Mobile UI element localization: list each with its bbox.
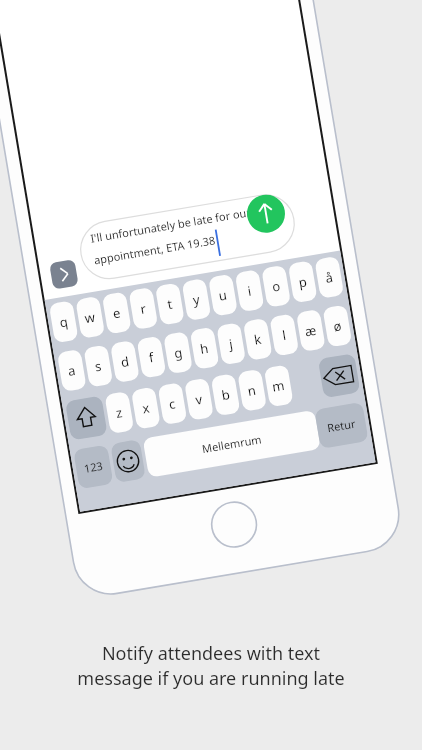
button[interactable]: Notify attendees screenshot — [0, 0, 422, 750]
